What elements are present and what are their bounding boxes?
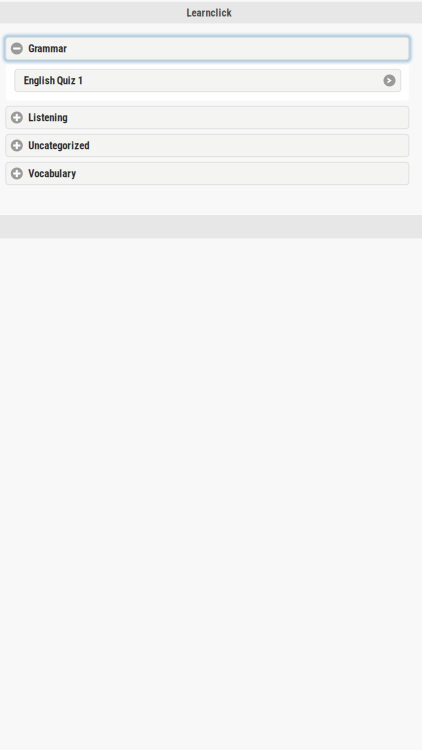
staticText: English Quiz 1 bbox=[24, 74, 83, 87]
staticText: Vocabulary bbox=[28, 167, 76, 180]
button[interactable]: Grammar bbox=[1, 32, 414, 65]
staticText: Uncategorized bbox=[28, 139, 89, 152]
staticText: Grammar bbox=[28, 42, 67, 55]
staticText: Listening bbox=[28, 111, 67, 124]
staticText: Learnclick bbox=[186, 6, 231, 19]
button[interactable]: English Quiz 1 bbox=[15, 69, 401, 92]
button[interactable]: Uncategorized bbox=[6, 134, 409, 157]
button[interactable]: Listening bbox=[6, 106, 409, 129]
button[interactable]: Vocabulary bbox=[6, 162, 409, 185]
